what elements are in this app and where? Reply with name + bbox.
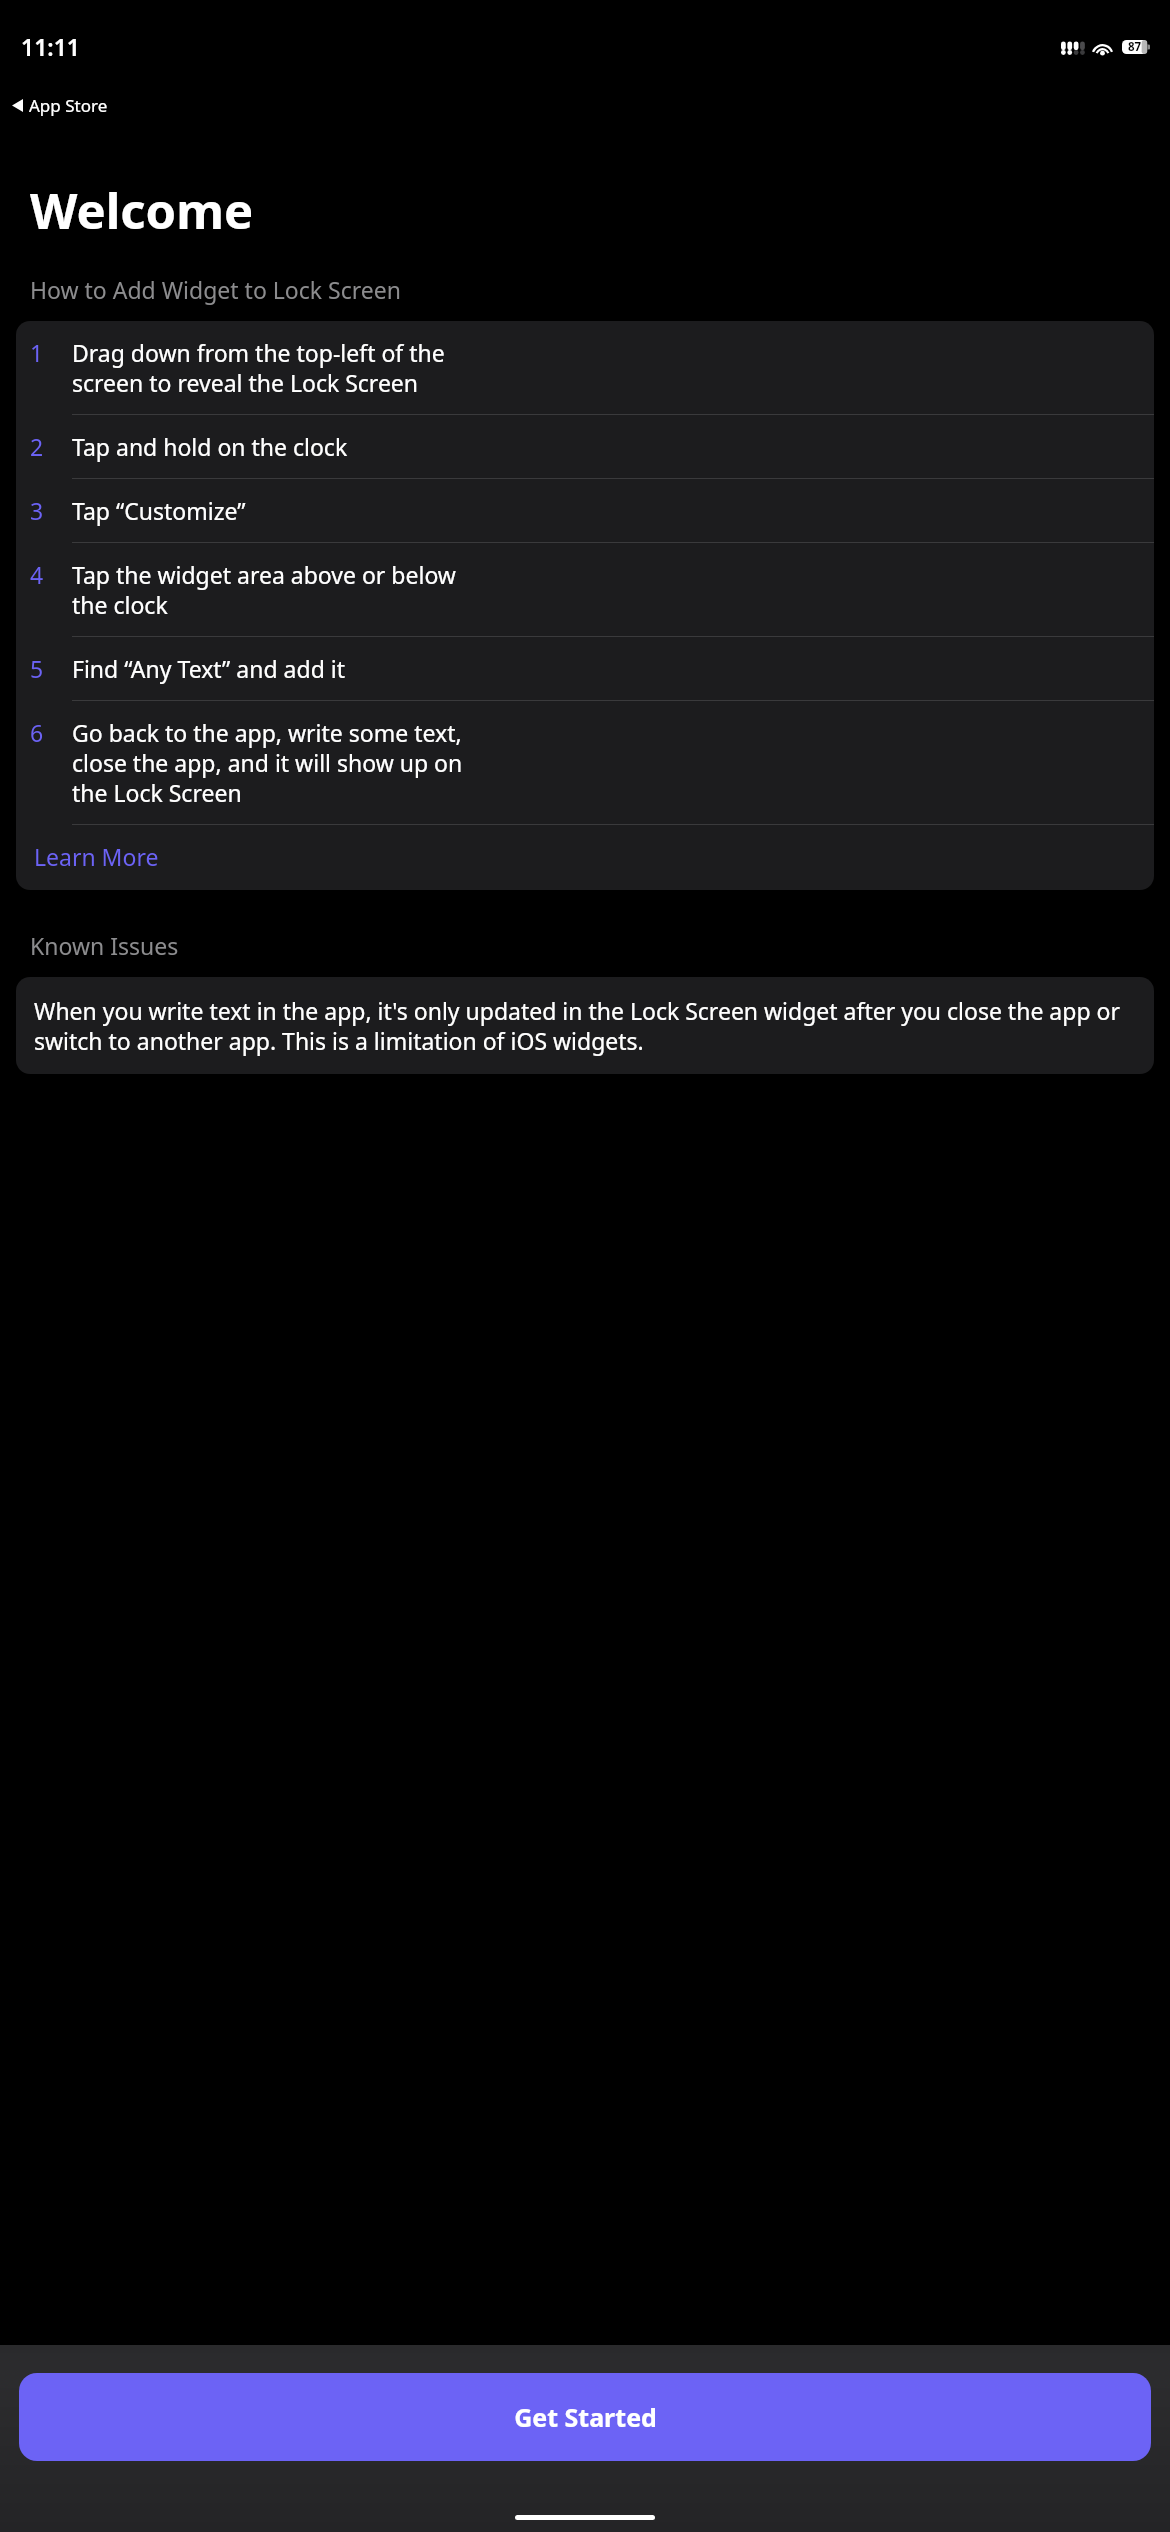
staticText: 3 [30, 495, 44, 526]
staticText: 1 [30, 337, 44, 368]
staticText: Tap and hold on the clock [72, 431, 348, 462]
staticText: When you write text in the app, it's onl… [34, 995, 1136, 1056]
staticText: Go back to the app, write some text, clo… [72, 717, 463, 808]
staticText: Known Issues [30, 930, 179, 961]
staticText: Tap “Customize” [72, 495, 246, 526]
button[interactable]: Learn More [16, 825, 1154, 890]
staticText: 6 [30, 717, 44, 748]
button[interactable]: 1 [16, 321, 1154, 414]
staticText: How to Add Widget to Lock Screen [30, 274, 401, 305]
button[interactable]: 6 [16, 701, 1154, 824]
staticText: 11:11 [21, 31, 80, 62]
staticText: App Store [29, 94, 108, 117]
staticText: 2 [30, 431, 44, 462]
button[interactable]: 3 [16, 479, 1154, 542]
button[interactable]: Get Started [19, 2373, 1151, 2461]
staticText: 4 [30, 559, 44, 590]
staticText: Find “Any Text” and add it [72, 653, 345, 684]
staticText: Learn More [34, 841, 159, 872]
button[interactable]: 2 [16, 415, 1154, 478]
button[interactable]: 4 [16, 543, 1154, 636]
staticText: Drag down from the top-left of the scree… [72, 337, 445, 398]
button[interactable]: 5 [16, 637, 1154, 700]
staticText: 87 [1128, 39, 1142, 55]
staticText: Tap the widget area above or below the c… [72, 559, 456, 620]
staticText: Welcome [30, 177, 254, 244]
staticText: 5 [30, 653, 44, 684]
staticText: Get Started [514, 2400, 657, 2434]
button[interactable]: Back to App Store [8, 92, 112, 119]
